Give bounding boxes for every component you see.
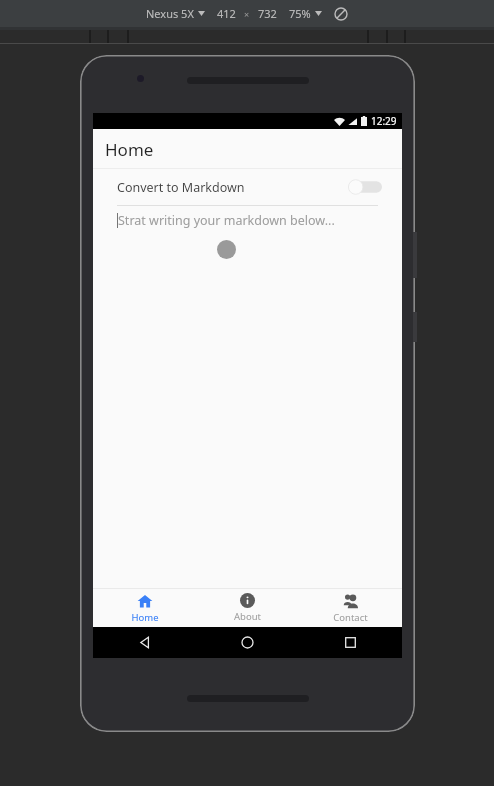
staticText: Nexus 5X — [146, 6, 194, 21]
button[interactable]: About — [196, 589, 299, 627]
staticText: About — [234, 610, 261, 623]
button[interactable]: Home — [93, 589, 196, 627]
button[interactable]: Recent apps — [299, 627, 402, 658]
staticText: 732 — [258, 6, 277, 21]
staticText: 75% — [289, 6, 311, 21]
staticText: 12:29 — [371, 114, 397, 128]
other: Convert to Markdown toggle — [348, 180, 382, 194]
staticText: Contact — [333, 611, 368, 624]
button[interactable]: Home — [196, 627, 299, 658]
button[interactable]: Contact — [299, 589, 402, 627]
button[interactable]: Back — [93, 627, 196, 658]
staticText: Home — [105, 138, 154, 161]
staticText: × — [244, 8, 250, 20]
button[interactable]: Strat writing your markdown below... — [93, 206, 402, 234]
button[interactable]: Convert to Markdown — [93, 169, 402, 205]
staticText: 412 — [217, 6, 236, 21]
staticText: Convert to Markdown — [117, 179, 245, 196]
other: Toggle rendering — [334, 7, 348, 21]
staticText: Strat writing your markdown below... — [118, 212, 335, 229]
staticText: Home — [131, 611, 159, 624]
